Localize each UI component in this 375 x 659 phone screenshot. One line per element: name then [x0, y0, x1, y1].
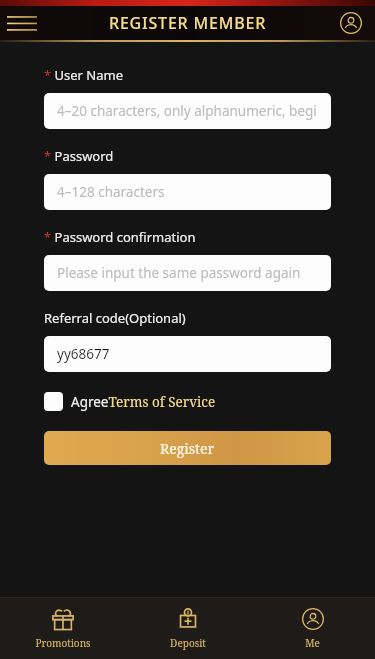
staticText: * Password	[44, 147, 114, 165]
staticText: yy68677	[57, 345, 110, 363]
button[interactable]: Please input the same password again	[44, 255, 331, 291]
button[interactable]: 4–20 characters, only alphanumeric, begi	[44, 93, 331, 129]
staticText: 4–20 characters, only alphanumeric, begi	[57, 102, 317, 120]
button[interactable]: AgreeTerms of Service	[44, 392, 331, 411]
staticText: * User Name	[44, 66, 124, 84]
button[interactable]: Me	[250, 598, 375, 659]
button[interactable]: Promotions	[0, 598, 125, 659]
staticText: Me	[305, 636, 320, 650]
button[interactable]: 4–128 characters	[44, 174, 331, 210]
staticText: Promotions	[35, 636, 91, 650]
button[interactable]: yy68677	[44, 336, 331, 372]
staticText: 4–128 characters	[57, 183, 165, 201]
staticText: Please input the same password again	[57, 264, 301, 282]
button[interactable]: Deposit	[125, 598, 250, 659]
button[interactable]: Menu	[2, 6, 42, 40]
staticText: * Password confirmation	[44, 228, 196, 246]
button[interactable]: Register	[44, 431, 331, 465]
button[interactable]: Account	[333, 6, 369, 40]
staticText: Referral code(Optional)	[44, 309, 186, 327]
staticText: AgreeTerms of Service	[71, 393, 216, 411]
staticText: Deposit	[170, 636, 206, 650]
staticText: Register	[160, 439, 215, 458]
staticText: REGISTER MEMBER	[109, 12, 267, 34]
